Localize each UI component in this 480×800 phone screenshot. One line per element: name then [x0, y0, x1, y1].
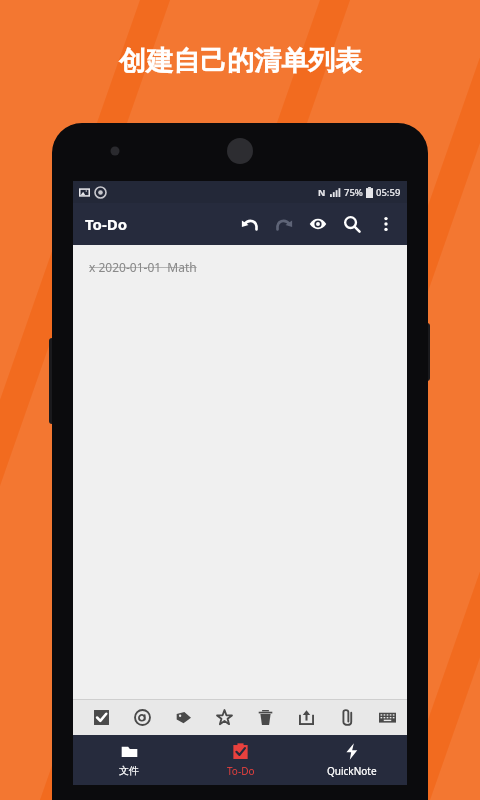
- button[interactable]: To-Do: [185, 735, 296, 785]
- button[interactable]: Toggle complete: [81, 699, 122, 735]
- button[interactable]: 文件: [73, 735, 185, 785]
- staticText: N: [318, 186, 326, 198]
- button[interactable]: Keyboard: [368, 699, 407, 735]
- button[interactable]: Undo: [233, 207, 267, 241]
- button[interactable]: Redo: [267, 207, 301, 241]
- button[interactable]: Tag: [163, 699, 204, 735]
- staticText: 05:59: [376, 186, 401, 199]
- staticText: To-Do: [85, 214, 128, 234]
- button[interactable]: Attach: [327, 699, 368, 735]
- staticText: x 2020-01-01 Math: [89, 259, 197, 275]
- button[interactable]: Share: [286, 699, 327, 735]
- staticText: To-Do: [227, 764, 255, 778]
- button[interactable]: Priority: [204, 699, 245, 735]
- staticText: QuickNote: [327, 764, 377, 778]
- button[interactable]: More options: [369, 207, 403, 241]
- button[interactable]: Delete: [245, 699, 286, 735]
- button[interactable]: Preview: [301, 207, 335, 241]
- button[interactable]: Search: [335, 207, 369, 241]
- button[interactable]: To-Do: [73, 214, 136, 234]
- button[interactable]: Context: [122, 699, 163, 735]
- staticText: 文件: [119, 764, 139, 777]
- button[interactable]: QuickNote: [296, 735, 407, 785]
- staticText: 75%: [344, 186, 363, 199]
- staticText: 创建自己的清单列表: [119, 44, 362, 78]
